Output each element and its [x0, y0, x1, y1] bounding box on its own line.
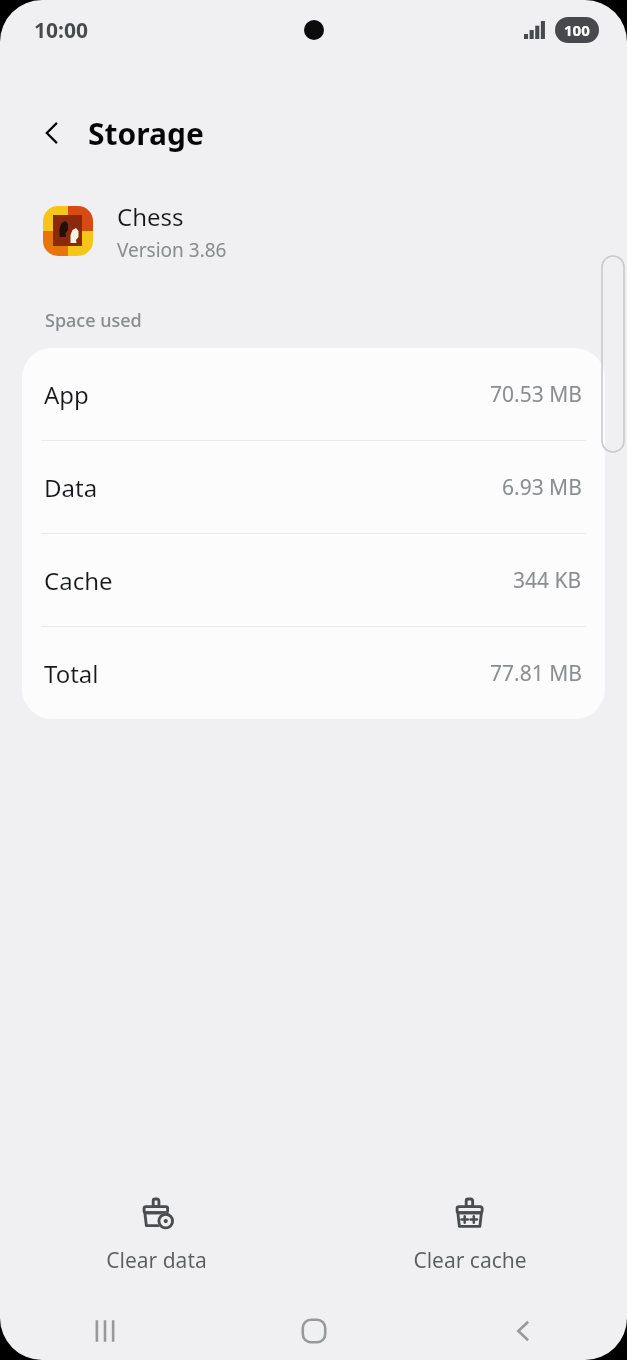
staticText: 100 — [564, 20, 590, 40]
button[interactable]: Data — [22, 441, 605, 533]
button[interactable]: Home — [209, 1302, 418, 1360]
button[interactable]: Back — [30, 111, 74, 155]
staticText: Version 3.86 — [117, 237, 227, 263]
button[interactable]: Recent apps — [0, 1302, 209, 1360]
button[interactable]: Clear cache — [313, 1190, 627, 1281]
staticText: 344 KB — [513, 566, 582, 595]
staticText: Storage — [88, 113, 204, 154]
staticText: 70.53 MB — [490, 380, 582, 409]
staticText: Space used — [45, 308, 142, 333]
staticText: Chess — [117, 200, 184, 233]
staticText: 6.93 MB — [502, 473, 582, 502]
staticText: Clear cache — [413, 1246, 527, 1275]
staticText: 10:00 — [34, 16, 88, 45]
staticText: Data — [44, 471, 98, 504]
button[interactable]: Total — [22, 627, 605, 719]
staticText: Total — [44, 657, 99, 690]
staticText: App — [44, 378, 89, 411]
staticText: Cache — [44, 564, 113, 597]
button[interactable]: Cache — [22, 534, 605, 626]
staticText: 77.81 MB — [490, 659, 582, 688]
button[interactable]: Back — [418, 1302, 627, 1360]
button[interactable]: Chess — [0, 194, 627, 268]
button[interactable]: App — [22, 348, 605, 440]
staticText: Clear data — [106, 1246, 207, 1275]
button[interactable]: Clear data — [0, 1190, 313, 1281]
